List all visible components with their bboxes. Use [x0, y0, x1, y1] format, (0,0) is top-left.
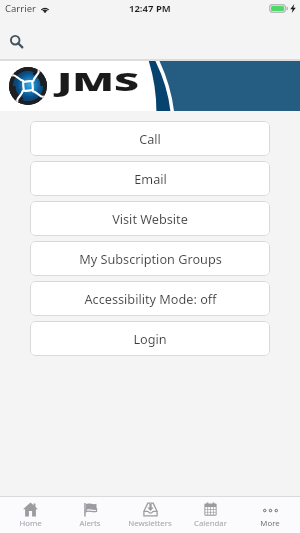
- staticText: Visit Website: [112, 210, 188, 227]
- staticText: Accessibility Mode: off: [84, 290, 217, 307]
- button[interactable]: Calendar: [180, 497, 240, 529]
- staticText: Login: [133, 330, 167, 347]
- staticText: Home: [19, 518, 42, 529]
- staticText: Call: [139, 130, 161, 147]
- staticText: Alerts: [79, 518, 101, 529]
- staticText: Newsletters: [128, 518, 172, 529]
- button[interactable]: Email: [30, 161, 270, 196]
- button[interactable]: Home: [0, 497, 60, 529]
- button[interactable]: Newsletters: [120, 497, 180, 529]
- button[interactable]: Call: [30, 121, 270, 156]
- button[interactable]: Search: [4, 29, 28, 53]
- staticText: Calendar: [194, 518, 227, 529]
- staticText: Carrier: [5, 2, 36, 15]
- button[interactable]: Visit Website: [30, 201, 270, 236]
- staticText: More: [260, 518, 280, 529]
- staticText: 12:47 PM: [129, 2, 171, 15]
- button[interactable]: Alerts: [60, 497, 120, 529]
- button[interactable]: More: [240, 497, 300, 529]
- button[interactable]: Login: [30, 321, 270, 356]
- button[interactable]: Accessibility Mode: off: [30, 281, 270, 316]
- button[interactable]: My Subscription Groups: [30, 241, 270, 276]
- staticText: JMS: [57, 65, 140, 98]
- staticText: My Subscription Groups: [79, 250, 222, 267]
- staticText: Email: [134, 170, 167, 187]
